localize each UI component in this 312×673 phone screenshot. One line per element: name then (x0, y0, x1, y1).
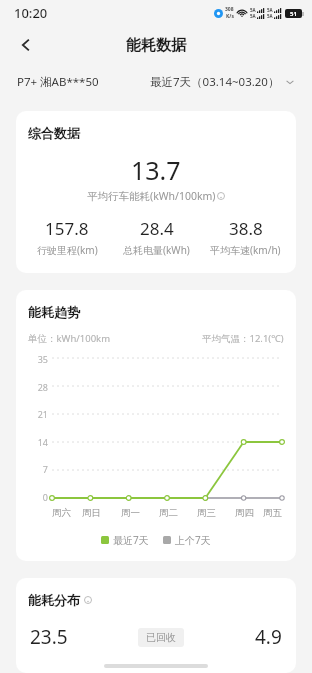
staticText: 周日 (82, 507, 101, 519)
staticText: 行驶里程(km) (37, 243, 98, 257)
staticText: 157.8 (45, 217, 89, 240)
staticText: 平均气温：12.1(℃) (202, 332, 284, 345)
staticText: 38.8 (229, 217, 263, 240)
button[interactable]: P7+ 湘AB***50 (17, 74, 99, 90)
staticText: 35 (37, 353, 48, 365)
staticText: 最近7天 (113, 533, 149, 547)
staticText: 周一 (121, 507, 140, 519)
staticText: 能耗数据 (126, 36, 186, 55)
staticText: 平均行车能耗(kWh/100km) (87, 189, 216, 203)
staticText: 4.9 (255, 624, 282, 650)
staticText: 0 (42, 491, 48, 503)
staticText: 5A (250, 13, 256, 19)
staticText: 7 (42, 463, 48, 475)
staticText: 13.7 (131, 153, 181, 187)
staticText: 5A (267, 7, 273, 13)
staticText: 23.5 (30, 624, 68, 650)
staticText: 周五 (263, 507, 282, 519)
button[interactable]: Back (6, 26, 46, 64)
staticText: 周六 (52, 507, 71, 519)
staticText: P7+ 湘AB***50 (17, 74, 99, 90)
staticText: 28.4 (140, 217, 174, 240)
staticText: 21 (37, 408, 48, 420)
staticText: 10:20 (14, 4, 48, 22)
button[interactable]: 已回收 (146, 631, 176, 644)
staticText: 最近7天（03.14~03.20） (150, 74, 280, 90)
staticText: 51 (290, 10, 297, 18)
staticText: K/s (226, 13, 234, 20)
staticText: 已回收 (146, 631, 176, 644)
staticText: 周二 (159, 507, 178, 519)
staticText: 能耗趋势 (28, 304, 80, 320)
staticText: 总耗电量(kWh) (123, 243, 190, 257)
staticText: 28 (37, 381, 48, 393)
staticText: 单位：kWh/100km (28, 332, 111, 345)
staticText: 能耗分布 (28, 592, 80, 608)
staticText: 周四 (235, 507, 254, 519)
staticText: 周三 (197, 507, 216, 519)
staticText: 14 (37, 436, 48, 448)
staticText: 5A (250, 7, 256, 13)
staticText: 上个7天 (175, 533, 211, 547)
staticText: 5A (267, 13, 273, 19)
staticText: 308 (225, 6, 234, 13)
staticText: 综合数据 (28, 125, 80, 141)
staticText: 平均车速(km/h) (210, 243, 281, 257)
button[interactable]: 最近7天（03.14~03.20） (150, 74, 295, 90)
